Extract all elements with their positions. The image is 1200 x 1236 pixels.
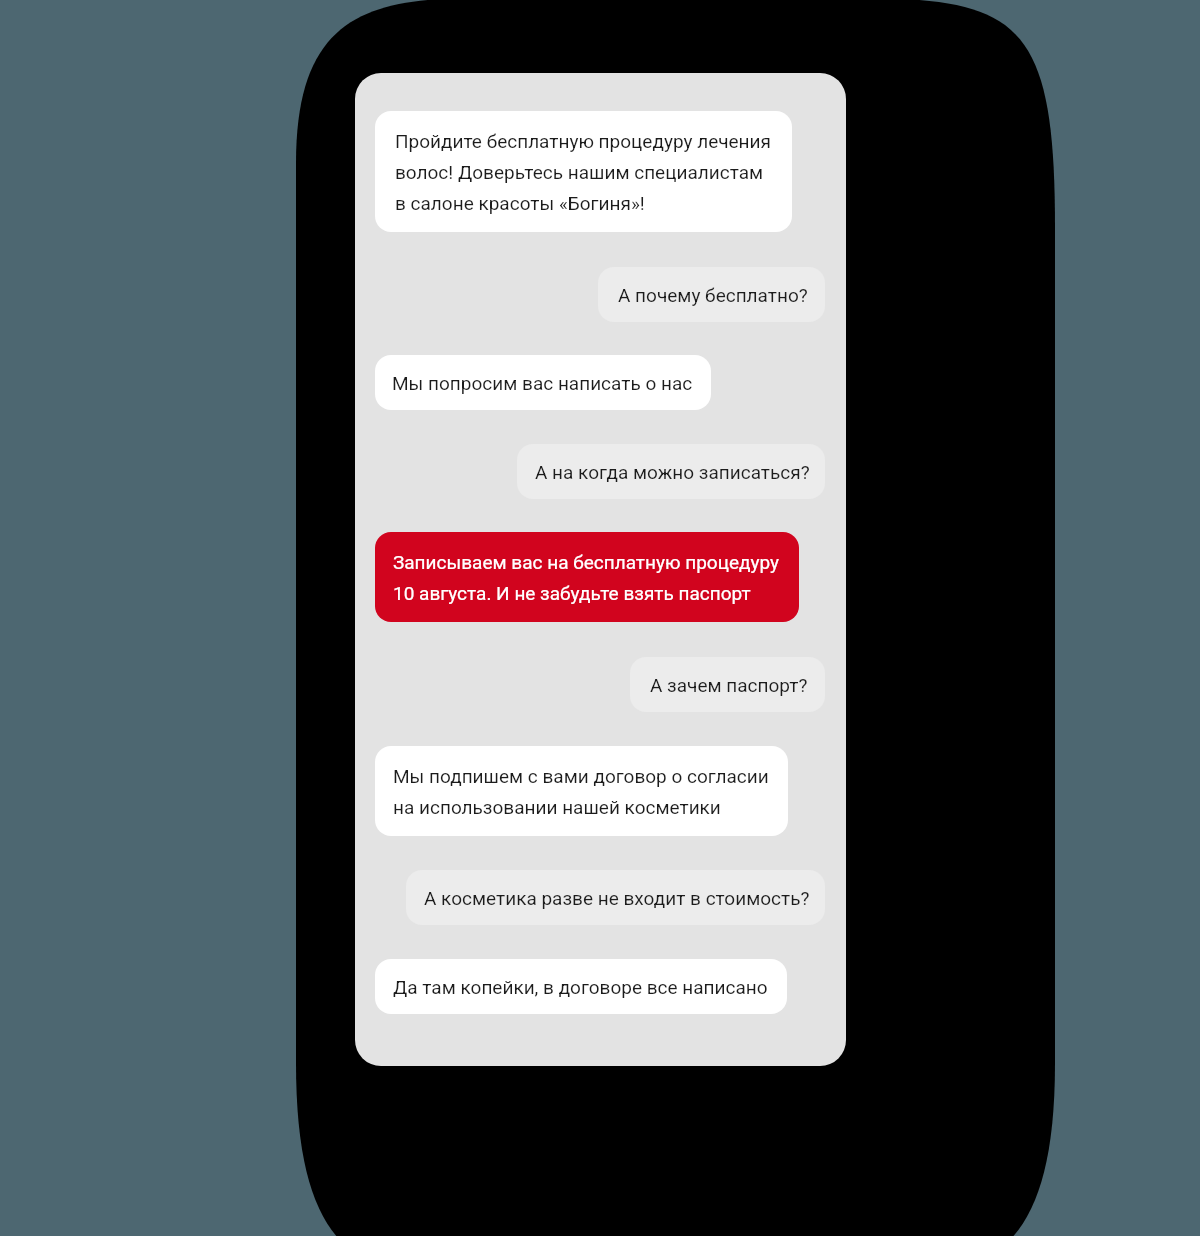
staticText: А зачем паспорт? <box>650 674 808 696</box>
staticText: Да там копейки, в договоре все написано <box>393 976 768 998</box>
staticText: Мы подпишем с вами договор о согласии на… <box>393 765 769 818</box>
button[interactable]: А почему бесплатно? <box>598 267 825 322</box>
staticText: А косметика разве не входит в стоимость? <box>424 887 810 909</box>
staticText: Мы попросим вас написать о нас <box>392 372 693 394</box>
button[interactable]: Да там копейки, в договоре все написано <box>375 959 787 1014</box>
staticText: А на когда можно записаться? <box>535 461 810 483</box>
staticText: Записываем вас на бесплатную процедуру 1… <box>393 551 779 604</box>
staticText: Пройдите бесплатную процедуру лечения во… <box>395 130 771 214</box>
button[interactable]: Пройдите бесплатную процедуру лечения во… <box>375 111 792 232</box>
button[interactable]: А зачем паспорт? <box>630 657 825 712</box>
button[interactable]: Мы попросим вас написать о нас <box>375 355 711 410</box>
button[interactable]: А косметика разве не входит в стоимость? <box>406 870 825 925</box>
staticText: А почему бесплатно? <box>618 284 808 306</box>
button[interactable]: Мы подпишем с вами договор о согласии на… <box>375 746 788 836</box>
button[interactable]: Записываем вас на бесплатную процедуру 1… <box>375 532 799 622</box>
other: Phone mockup <box>0 0 1200 1236</box>
button[interactable]: А на когда можно записаться? <box>517 444 825 499</box>
